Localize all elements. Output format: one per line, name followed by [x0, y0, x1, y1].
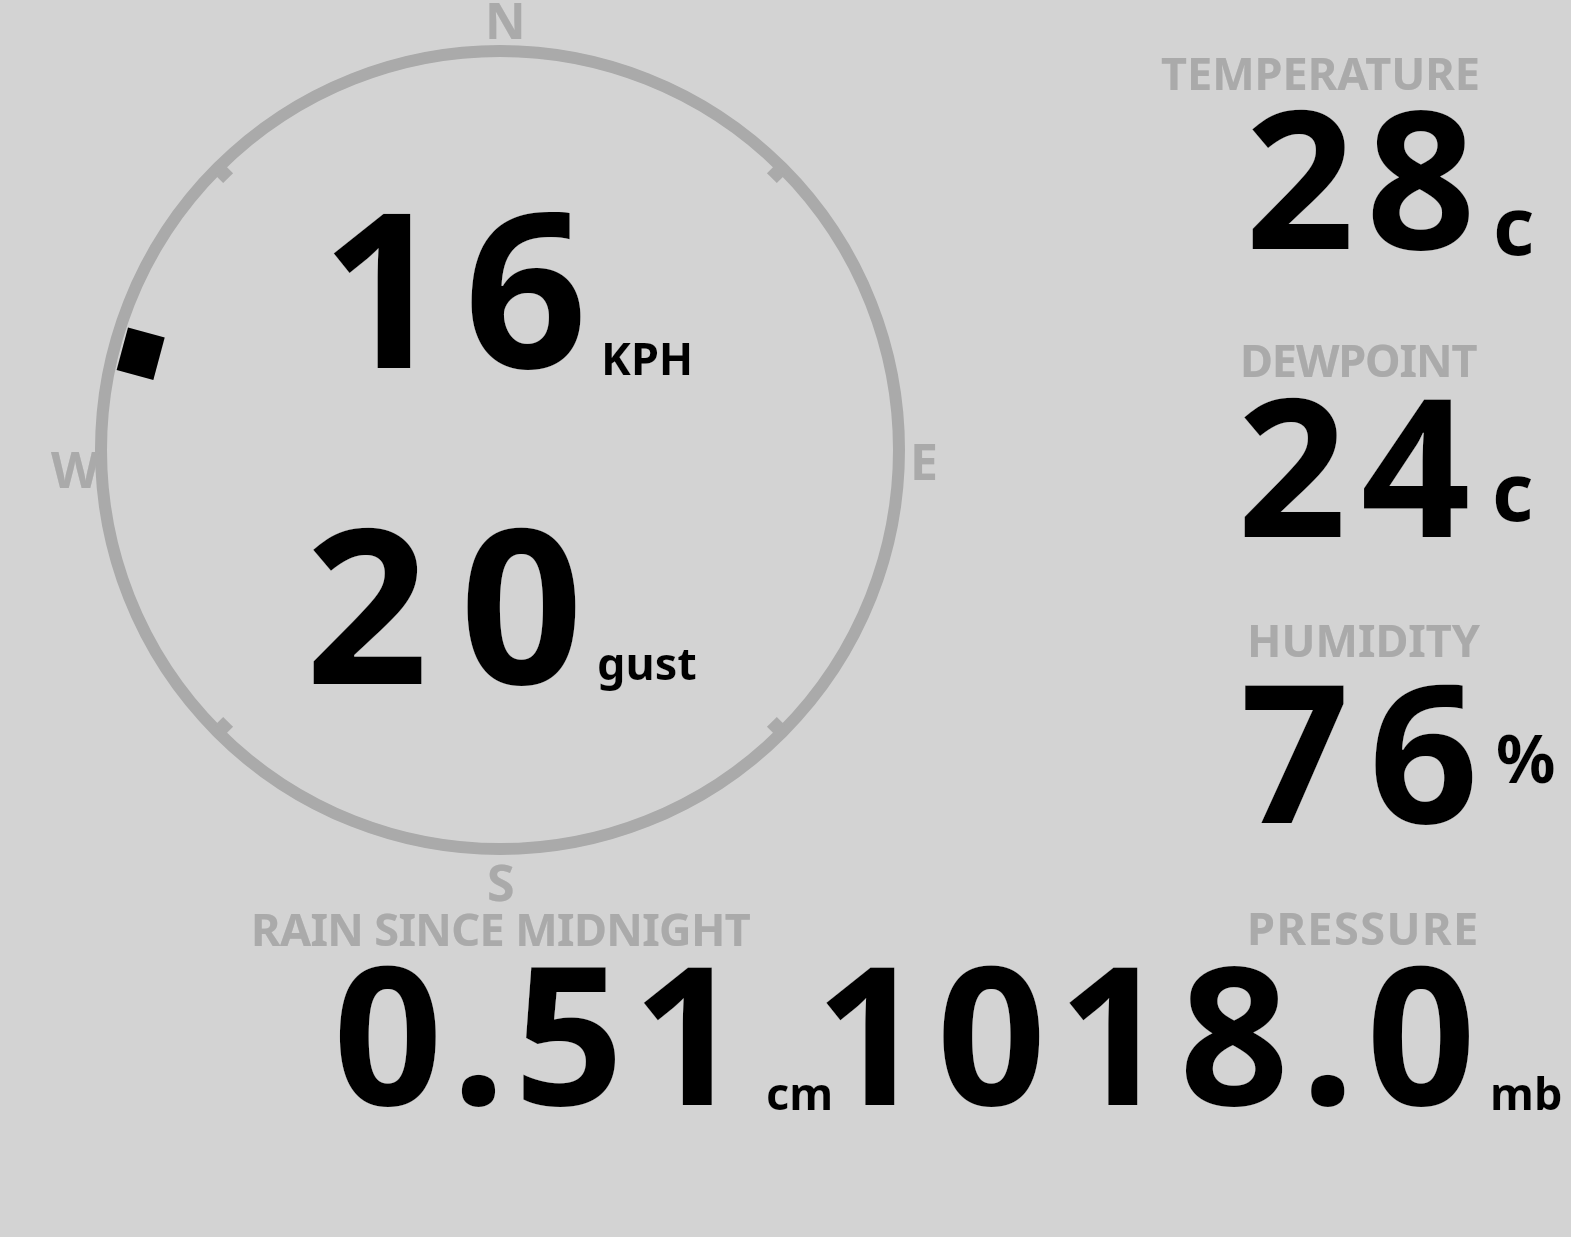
- staticText: 24: [1237, 332, 1485, 594]
- staticText: c: [1492, 435, 1534, 544]
- staticText: c: [1493, 169, 1535, 278]
- staticText: %: [1496, 712, 1556, 802]
- staticText: 76: [1240, 618, 1498, 880]
- staticText: 1018.0: [815, 900, 1488, 1162]
- staticText: 0.51: [333, 900, 751, 1162]
- staticText: PRESSURE: [1247, 897, 1480, 958]
- staticText: N: [485, 0, 526, 54]
- staticText: 28: [1245, 44, 1487, 306]
- button[interactable]: Dew point 24 degrees Celsius: [1150, 336, 1571, 551]
- staticText: RAIN SINCE MIDNIGHT: [251, 898, 751, 959]
- staticText: KPH: [601, 327, 694, 388]
- button[interactable]: Temperature 28 degrees Celsius: [1150, 50, 1571, 265]
- staticText: S: [487, 848, 515, 916]
- staticText: DEWPOINT: [1240, 329, 1477, 390]
- button[interactable]: Humidity 76 percent: [1150, 617, 1571, 832]
- staticText: 16: [321, 137, 607, 431]
- button[interactable]: Rain since midnight 0.51 cm: [240, 905, 840, 1120]
- staticText: TEMPERATURE: [1161, 42, 1480, 103]
- button[interactable]: Wind 16 KPH, gusting 20, from west north…: [95, 46, 905, 856]
- button[interactable]: Pressure 1018.0 millibars: [845, 905, 1571, 1120]
- staticText: W: [51, 435, 100, 503]
- staticText: E: [910, 427, 938, 495]
- staticText: 20: [305, 453, 615, 747]
- staticText: HUMIDITY: [1247, 609, 1480, 670]
- staticText: cm: [766, 1062, 834, 1123]
- staticText: mb: [1490, 1062, 1563, 1123]
- staticText: gust: [597, 632, 697, 693]
